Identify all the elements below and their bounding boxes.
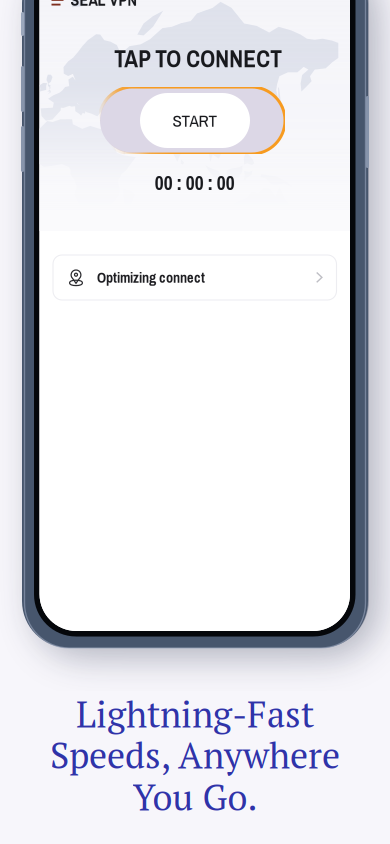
staticText: TAP TO CONNECT: [114, 43, 282, 75]
button[interactable]: START: [97, 85, 287, 156]
staticText: Lightning-Fast: [76, 690, 314, 738]
staticText: 00 : 00 : 00: [155, 170, 235, 196]
staticText: START: [172, 109, 217, 132]
staticText: You Go.: [132, 773, 257, 821]
button[interactable]: SEAL VPN: [51, 0, 136, 11]
staticText: Optimizing connect: [97, 268, 205, 287]
button[interactable]: Optimizing connect: [53, 255, 336, 300]
staticText: Speeds, Anywhere: [50, 731, 340, 779]
staticText: SEAL VPN: [70, 0, 136, 11]
